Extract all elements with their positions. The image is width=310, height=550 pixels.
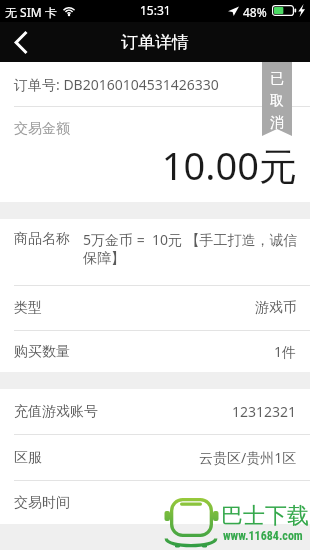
button[interactable]: Back xyxy=(0,22,40,62)
staticText: 类型 xyxy=(14,299,42,317)
button[interactable]: 购买数量 xyxy=(14,331,297,372)
staticText: 巴士下载 xyxy=(221,502,309,530)
staticText: 交易时间 xyxy=(14,494,70,512)
staticText: 充值游戏账号 xyxy=(14,403,98,421)
button[interactable]: 充值游戏账号 xyxy=(14,389,297,434)
staticText: www.11684.com xyxy=(223,529,303,543)
staticText: 10.00元 xyxy=(0,139,297,191)
staticText: 游戏币 xyxy=(255,299,297,317)
staticText: 云贵区/贵州1区 xyxy=(199,448,297,467)
button[interactable]: 类型 xyxy=(14,286,297,330)
button[interactable]: 交易时间 xyxy=(14,481,297,524)
staticText: 商品名称 xyxy=(14,230,70,248)
staticText: 48% xyxy=(243,4,267,20)
staticText: 1件 xyxy=(274,342,297,361)
staticText: 取 xyxy=(270,92,284,110)
staticText: 消 xyxy=(270,114,284,132)
staticText: 12312321 xyxy=(232,402,297,421)
staticText: 已 xyxy=(270,70,284,88)
staticText: 5万金币 = 10元 【手工打造，诚信保障】 xyxy=(83,230,298,268)
staticText: 订单详情 xyxy=(121,32,189,53)
staticText: 交易金额 xyxy=(14,120,70,138)
staticText: 无 SIM 卡 xyxy=(5,4,57,20)
button[interactable]: 区服 xyxy=(14,435,297,480)
staticText: 订单号: DB20160104531426330 xyxy=(14,75,219,94)
staticText: 区服 xyxy=(14,449,42,467)
staticText: 15:31 xyxy=(140,2,171,18)
staticText: 购买数量 xyxy=(14,343,70,361)
